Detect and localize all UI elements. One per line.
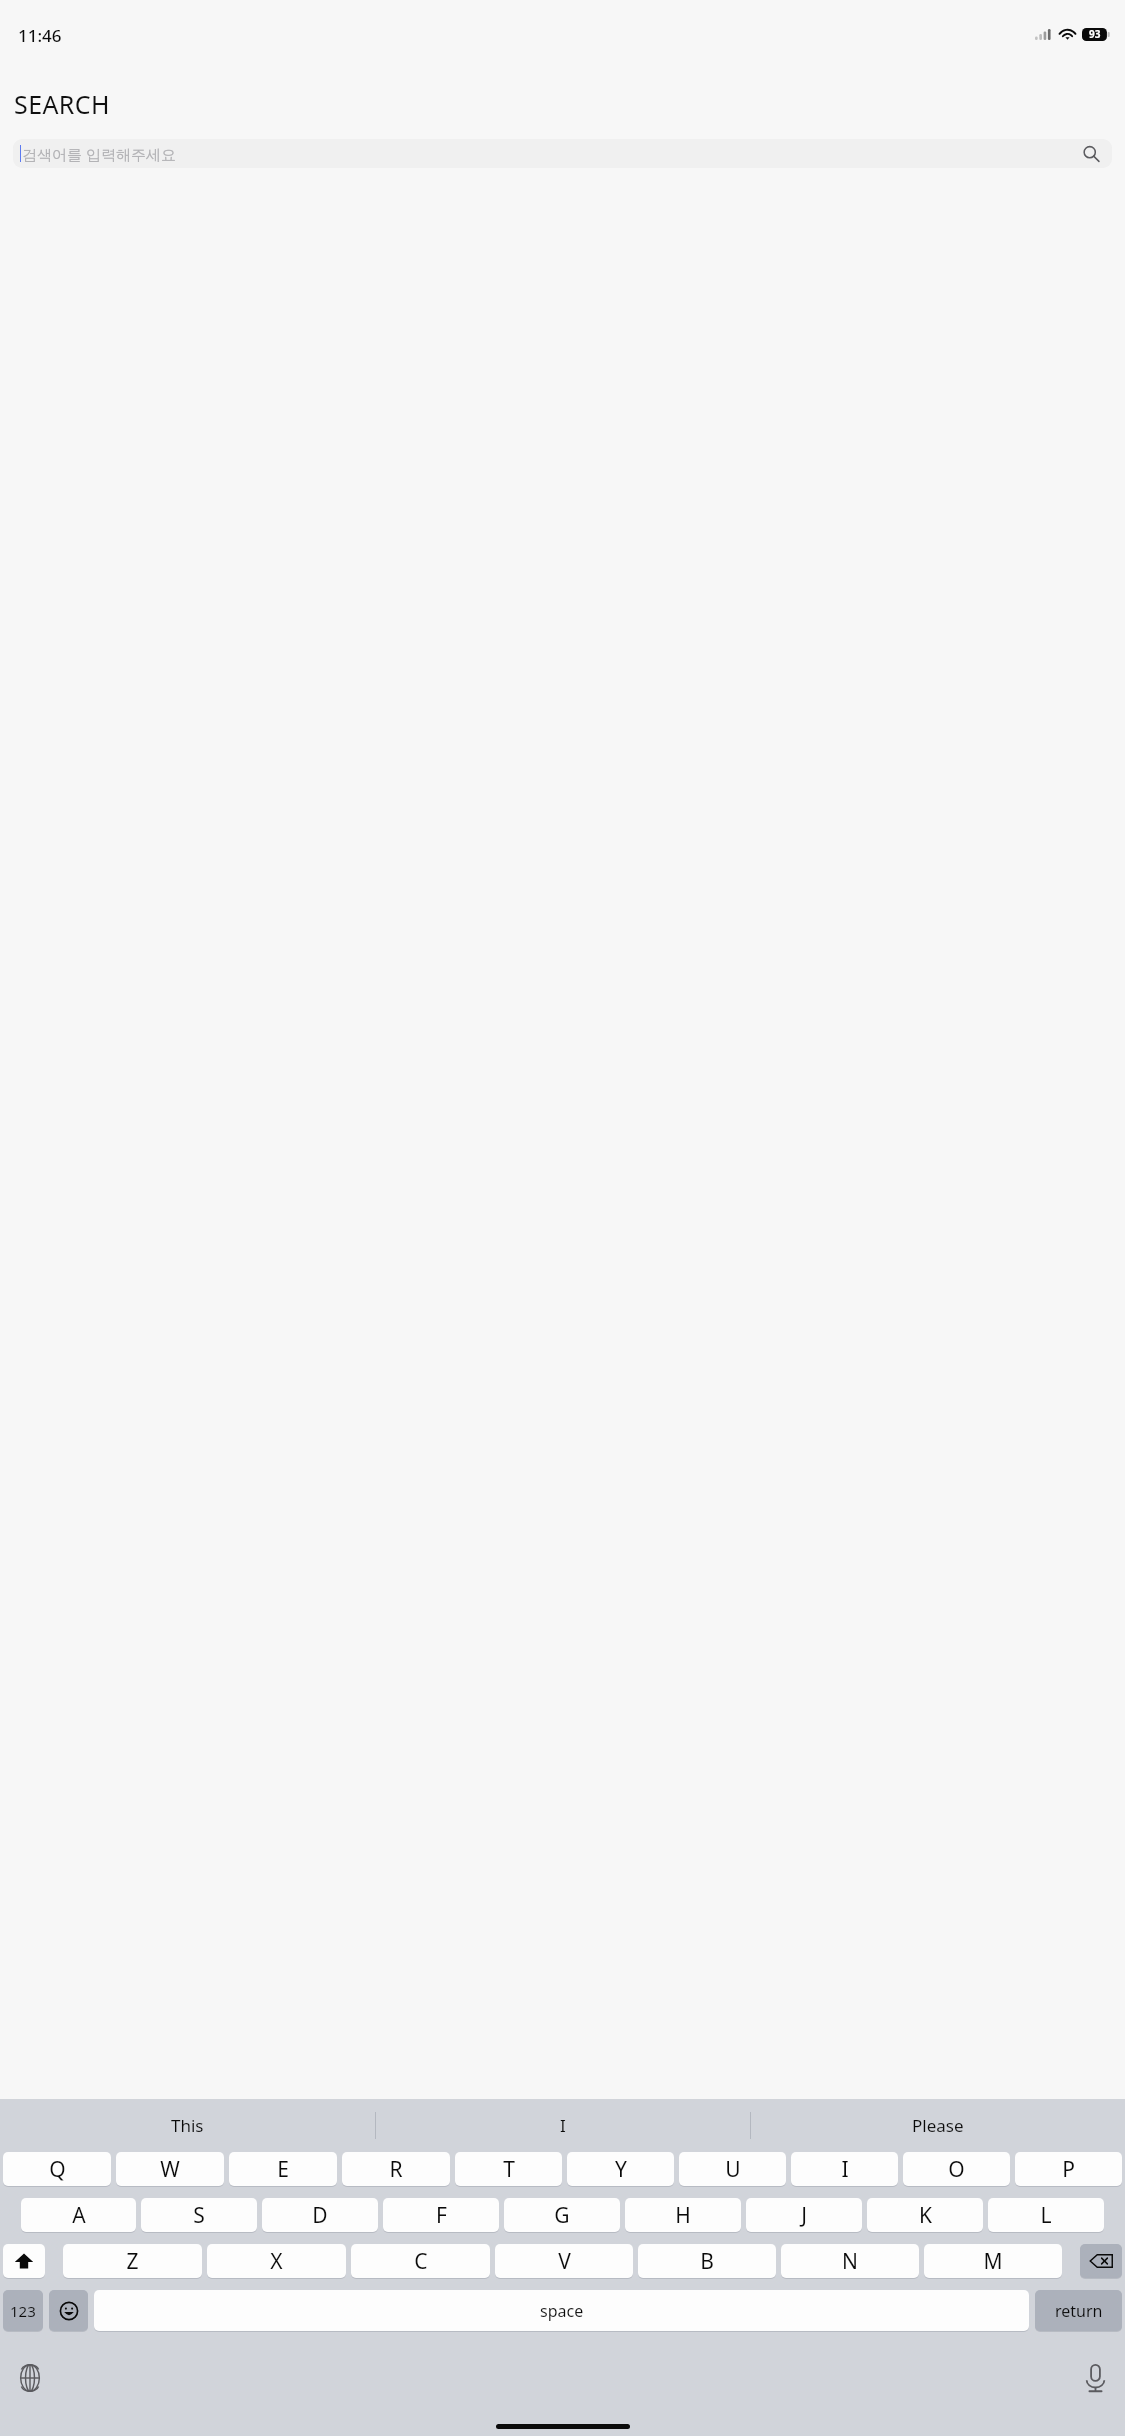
button[interactable]: D — [262, 2198, 378, 2232]
button[interactable]: R — [342, 2152, 450, 2186]
staticText: return — [1055, 2300, 1103, 2322]
staticText: O — [948, 2155, 965, 2184]
button[interactable]: P — [1015, 2152, 1122, 2186]
staticText: G — [554, 2201, 570, 2230]
button[interactable]: M — [924, 2244, 1062, 2278]
button[interactable]: 검색어를 입력해주세요 — [13, 139, 1112, 168]
button[interactable]: space — [94, 2290, 1029, 2331]
button[interactable]: H — [625, 2198, 741, 2232]
staticText: 93 — [1089, 27, 1101, 41]
staticText: This — [171, 2114, 204, 2137]
staticText: Please — [912, 2114, 964, 2137]
staticText: N — [842, 2247, 858, 2276]
button[interactable]: T — [455, 2152, 562, 2186]
staticText: Y — [615, 2155, 627, 2184]
staticText: SEARCH — [14, 87, 110, 121]
staticText: J — [801, 2201, 807, 2230]
button[interactable]: G — [504, 2198, 620, 2232]
button[interactable]: W — [116, 2152, 224, 2186]
button[interactable]: This — [0, 2099, 375, 2152]
button[interactable]: Dictation — [1073, 2356, 1117, 2400]
button[interactable]: U — [679, 2152, 786, 2186]
button[interactable]: Shift — [3, 2244, 45, 2278]
button[interactable]: F — [383, 2198, 499, 2232]
button[interactable]: X — [207, 2244, 346, 2278]
staticText: I — [560, 2114, 566, 2137]
button[interactable]: Emoji — [49, 2290, 88, 2331]
staticText: S — [193, 2201, 205, 2230]
button[interactable]: N — [781, 2244, 919, 2278]
button[interactable]: Change keyboard — [8, 2356, 52, 2400]
staticText: X — [270, 2247, 283, 2276]
staticText: Q — [49, 2155, 66, 2184]
button[interactable]: Z — [63, 2244, 202, 2278]
button[interactable]: Backspace — [1080, 2244, 1122, 2278]
staticText: F — [436, 2201, 447, 2230]
staticText: I — [841, 2155, 849, 2184]
staticText: M — [983, 2247, 1003, 2276]
staticText: T — [503, 2155, 515, 2184]
other: Search — [1082, 145, 1100, 163]
button[interactable]: B — [638, 2244, 776, 2278]
staticText: 11:46 — [18, 24, 62, 47]
button[interactable]: Please — [751, 2099, 1125, 2152]
staticText: R — [389, 2155, 403, 2184]
button[interactable]: I — [791, 2152, 898, 2186]
staticText: B — [700, 2247, 714, 2276]
button[interactable]: Y — [567, 2152, 674, 2186]
staticText: 123 — [10, 2301, 36, 2321]
staticText: 검색어를 입력해주세요 — [22, 144, 1082, 164]
button[interactable]: L — [988, 2198, 1104, 2232]
staticText: A — [72, 2201, 86, 2230]
button[interactable]: I — [376, 2099, 750, 2152]
staticText: Z — [126, 2247, 139, 2276]
staticText: space — [540, 2300, 584, 2322]
button[interactable]: C — [351, 2244, 490, 2278]
button[interactable]: return — [1035, 2290, 1122, 2331]
staticText: H — [675, 2201, 691, 2230]
button[interactable]: A — [21, 2198, 136, 2232]
staticText: W — [160, 2155, 180, 2184]
button[interactable]: O — [903, 2152, 1010, 2186]
staticText: U — [725, 2155, 741, 2184]
button[interactable]: K — [867, 2198, 983, 2232]
staticText: P — [1062, 2155, 1075, 2184]
staticText: E — [277, 2155, 289, 2184]
button[interactable]: E — [229, 2152, 337, 2186]
button[interactable]: V — [495, 2244, 633, 2278]
button[interactable]: Q — [3, 2152, 111, 2186]
button[interactable]: 123 — [3, 2290, 43, 2331]
staticText: L — [1040, 2201, 1052, 2230]
button[interactable]: J — [746, 2198, 862, 2232]
staticText: D — [312, 2201, 328, 2230]
staticText: C — [414, 2247, 428, 2276]
staticText: V — [558, 2247, 571, 2276]
staticText: K — [919, 2201, 932, 2230]
button[interactable]: S — [141, 2198, 257, 2232]
